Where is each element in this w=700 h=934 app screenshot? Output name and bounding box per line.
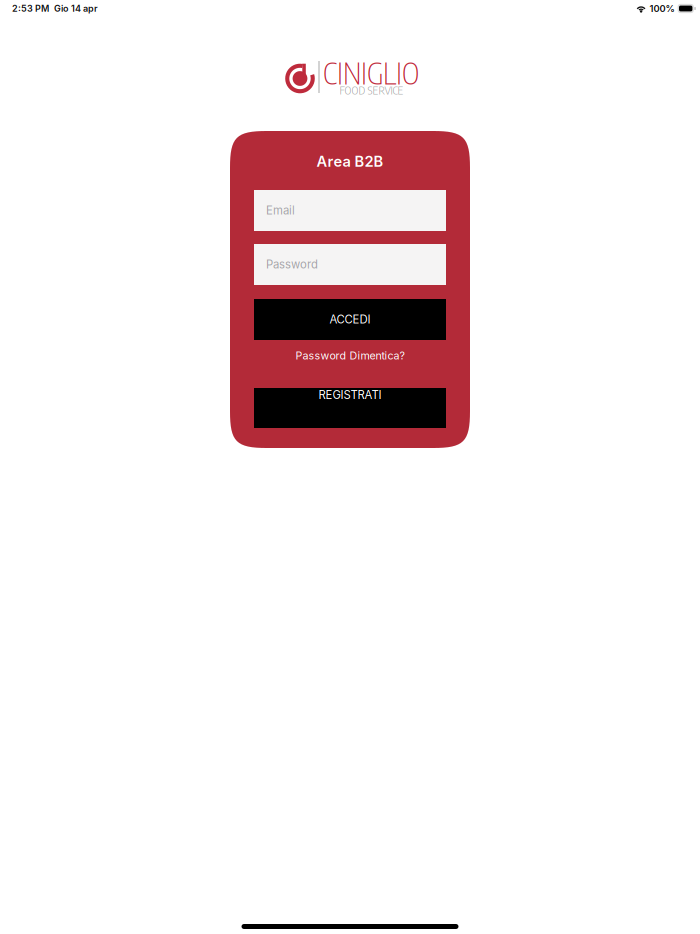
staticText: Password Dimentica? xyxy=(295,349,404,362)
staticText: Area B2B xyxy=(316,153,383,170)
staticText: 2:53 PM xyxy=(12,3,49,14)
staticText: Email xyxy=(266,204,295,217)
staticText: REGISTRATI xyxy=(318,388,381,402)
staticText: 100% xyxy=(650,3,675,14)
staticText: CINIGLIO xyxy=(323,54,419,91)
button[interactable]: Password Dimentica? xyxy=(254,342,446,368)
staticText: FOOD SERVICE xyxy=(339,83,403,97)
staticText: Password xyxy=(266,258,318,271)
button[interactable]: ACCEDI xyxy=(254,299,446,340)
staticText: ACCEDI xyxy=(329,313,370,326)
staticText: Gio 14 apr xyxy=(54,3,98,14)
button[interactable]: REGISTRATI xyxy=(254,388,446,428)
